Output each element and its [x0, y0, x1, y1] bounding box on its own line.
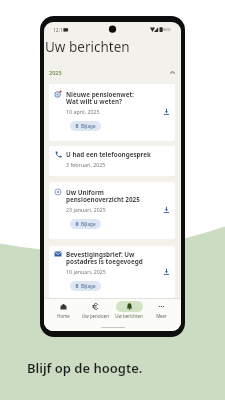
staticText: Uw pensioen: [82, 313, 109, 319]
staticText: Blijf op de hoogte.: [27, 359, 143, 377]
staticText: Bevestigingsbrief: Uw postadres is toege…: [66, 250, 143, 265]
staticText: Uw berichten: [45, 38, 130, 56]
staticText: Bijlage: [81, 283, 96, 289]
button[interactable]: Bijlage: [70, 281, 101, 291]
staticText: U had een telefoongesprek: [66, 150, 151, 159]
button[interactable]: Bevestigingsbrief: Uw postadres is toege…: [49, 246, 175, 298]
staticText: Nieuwe pensioenwet: Wat wilt u weten?: [66, 90, 134, 105]
button[interactable]: Home: [50, 301, 77, 319]
button[interactable]: Download: [162, 205, 171, 214]
staticText: Bijlage: [81, 221, 96, 227]
staticText: 12:10: [53, 27, 66, 34]
button[interactable]: Uw pensioen: [82, 301, 109, 319]
button[interactable]: Meer: [148, 301, 175, 319]
staticText: 10 april, 2025: [66, 108, 100, 115]
staticText: 10 januari, 2025: [66, 268, 106, 275]
button[interactable]: Uw berichten: [115, 301, 143, 319]
button[interactable]: 2025: [44, 66, 181, 78]
staticText: Home: [57, 313, 70, 319]
staticText: Uw berichten: [115, 313, 143, 319]
staticText: 23 januari, 2025: [66, 206, 106, 213]
staticText: Bijlage: [81, 123, 96, 129]
button[interactable]: Uw Uniform pensioenoverzicht 2025: [49, 182, 175, 239]
button[interactable]: Nieuwe pensioenwet: Wat wilt u weten?: [49, 84, 175, 141]
button[interactable]: Inklappen: [168, 68, 176, 76]
button[interactable]: U had een telefoongesprek: [49, 146, 175, 176]
button[interactable]: Download: [162, 267, 171, 276]
staticText: 3 februari, 2025: [66, 161, 106, 168]
staticText: Uw Uniform pensioenoverzicht 2025: [66, 188, 140, 203]
button[interactable]: Bijlage: [70, 121, 101, 131]
staticText: 2025: [49, 69, 62, 76]
staticText: Meer: [156, 313, 167, 319]
button[interactable]: Bijlage: [70, 219, 101, 229]
staticText: 96%: [163, 27, 171, 32]
button[interactable]: Download: [162, 107, 171, 116]
